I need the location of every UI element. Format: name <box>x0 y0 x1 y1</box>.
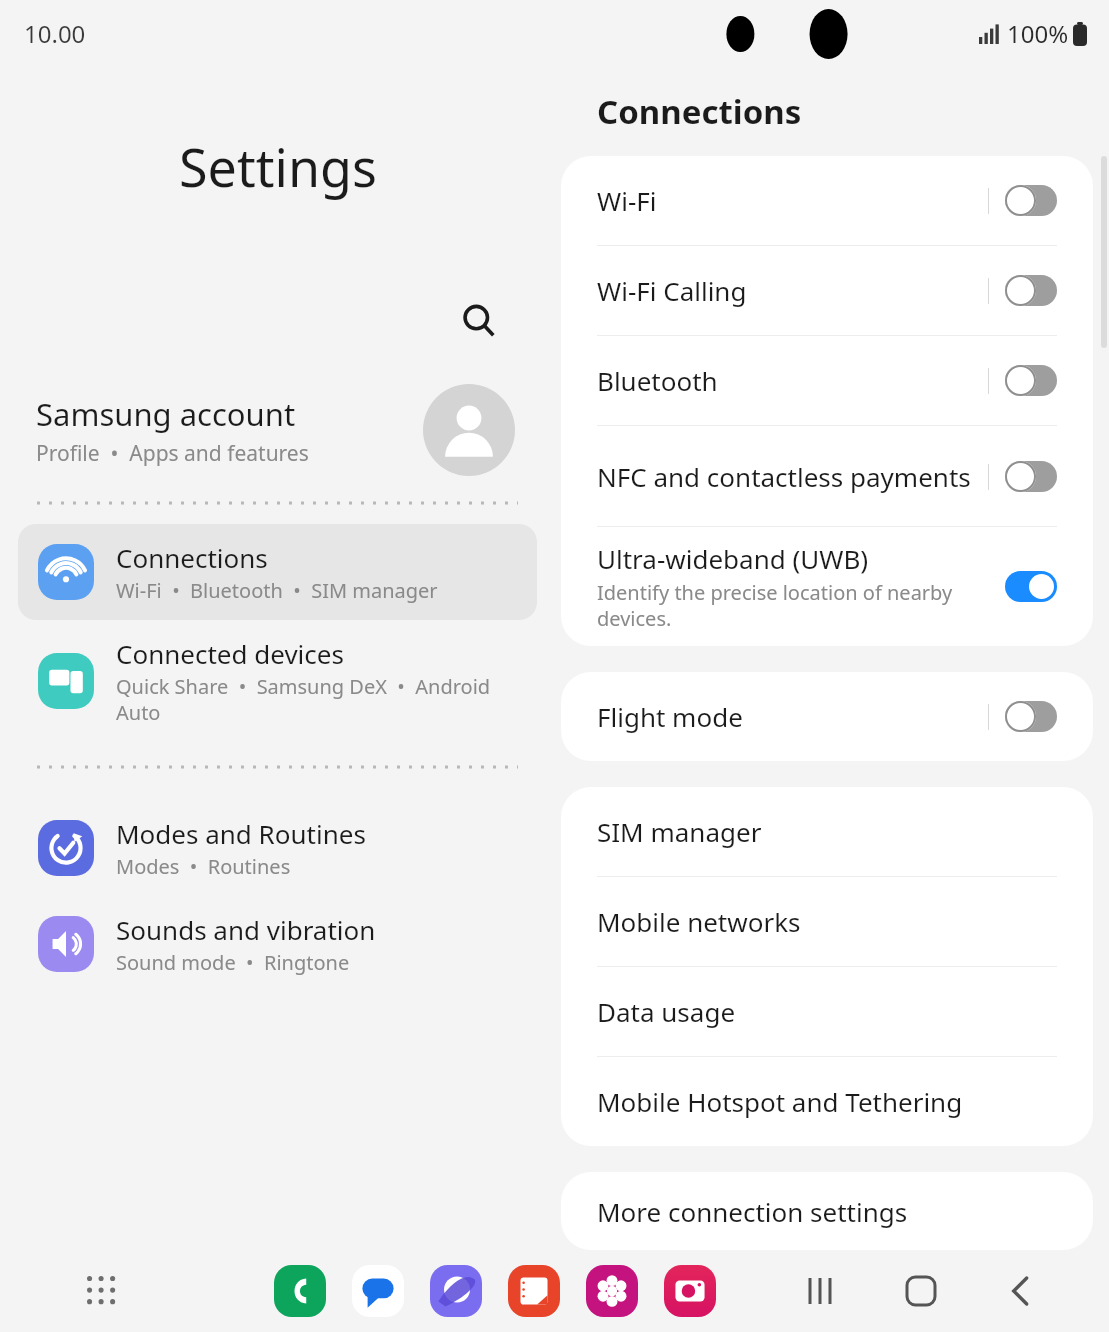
staticText: Sound mode • Ringtone <box>116 949 350 976</box>
button[interactable]: Sounds and vibration <box>18 896 537 992</box>
button[interactable]: Apps <box>74 1263 130 1319</box>
staticText: Connected devices <box>116 636 344 671</box>
staticText: Samsung account <box>36 393 296 435</box>
staticText: Data usage <box>597 994 736 1029</box>
button[interactable]: Camera <box>661 1262 719 1320</box>
button[interactable]: Samsung Notes <box>505 1262 563 1320</box>
button[interactable]: Connections <box>18 524 537 620</box>
button[interactable]: Phone <box>271 1262 329 1320</box>
staticText: SIM manager <box>597 814 762 849</box>
button[interactable]: Ultra-wideband (UWB) <box>561 527 1093 646</box>
button[interactable]: Mobile Hotspot and Tethering <box>561 1057 1093 1146</box>
staticText: 100% <box>1007 17 1069 50</box>
staticText: NFC and contactless payments <box>597 459 971 494</box>
button[interactable]: Gallery <box>583 1262 641 1320</box>
button[interactable]: More connection settings <box>561 1172 1093 1250</box>
button[interactable]: Wi-Fi <box>561 156 1093 245</box>
staticText: Bluetooth <box>597 363 718 398</box>
button[interactable]: Data usage <box>561 967 1093 1056</box>
staticText: Wi-Fi • Bluetooth • SIM manager <box>116 577 438 604</box>
button[interactable]: Flight mode <box>561 672 1093 761</box>
staticText: Identify the precise location of nearby … <box>597 579 988 632</box>
button[interactable]: SIM manager <box>561 787 1093 876</box>
button[interactable]: Search <box>451 293 507 349</box>
button[interactable]: Back <box>993 1263 1049 1319</box>
staticText: Connections <box>597 89 802 134</box>
button[interactable]: Home <box>893 1263 949 1319</box>
button[interactable]: Internet <box>427 1262 485 1320</box>
staticText: Profile • Apps and features <box>36 439 309 468</box>
staticText: Modes and Routines <box>116 816 366 851</box>
staticText: Mobile Hotspot and Tethering <box>597 1084 963 1119</box>
staticText: Wi-Fi <box>597 183 657 218</box>
staticText: Wi-Fi Calling <box>597 273 747 308</box>
staticText: Ultra-wideband (UWB) <box>597 541 869 576</box>
staticText: Settings <box>179 131 377 202</box>
button[interactable]: Messages <box>349 1262 407 1320</box>
staticText: Connections <box>116 540 268 575</box>
button[interactable]: Connected devices <box>18 620 537 742</box>
button[interactable]: Modes and Routines <box>18 800 537 896</box>
button[interactable]: Samsung account <box>0 376 555 496</box>
staticText: Quick Share • Samsung DeX • Android Auto <box>116 673 517 726</box>
button[interactable]: Wi-Fi Calling <box>561 246 1093 335</box>
staticText: More connection settings <box>597 1194 908 1229</box>
staticText: 10.00 <box>24 17 86 50</box>
button[interactable]: Mobile networks <box>561 877 1093 966</box>
button[interactable]: Bluetooth <box>561 336 1093 425</box>
staticText: Sounds and vibration <box>116 912 376 947</box>
button[interactable]: Recents <box>793 1263 849 1319</box>
button[interactable]: NFC and contactless payments <box>561 426 1093 526</box>
staticText: Modes • Routines <box>116 853 291 880</box>
staticText: Mobile networks <box>597 904 801 939</box>
staticText: Flight mode <box>597 699 743 734</box>
